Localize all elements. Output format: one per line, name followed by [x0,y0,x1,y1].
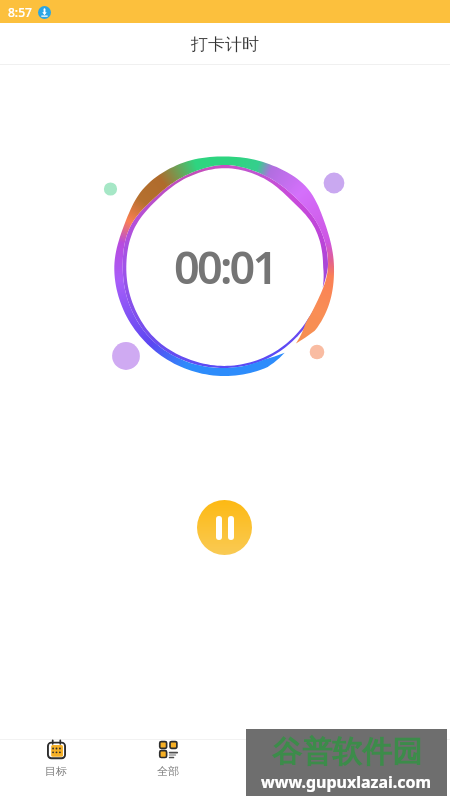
staticText: 谷普软件园 [272,733,422,771]
staticText: www.gupuxlazai.com [261,771,432,793]
button[interactable]: 我的 [337,740,450,778]
staticText: 打卡计时 [191,34,259,55]
staticText: 目标 [45,764,67,778]
staticText: 我的 [383,764,405,778]
button[interactable]: Pause [197,500,252,555]
staticText: 8:57 [8,4,32,20]
staticText: 00:01 [174,236,276,297]
button[interactable]: 目标 [0,740,112,778]
staticText: 全部 [157,764,179,778]
button[interactable]: 统计 [224,740,337,778]
staticText: 统计 [270,764,292,778]
button[interactable]: 全部 [112,740,224,778]
